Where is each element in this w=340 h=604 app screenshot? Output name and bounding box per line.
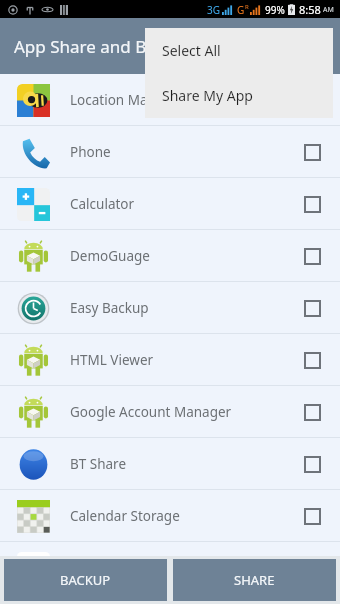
staticText: Calculator [70,195,292,213]
button[interactable]: Select Calendar Storage [292,496,332,536]
button[interactable]: Kingsoft Office [0,542,340,593]
button[interactable]: BACKUP [4,559,167,601]
staticText: Calendar Storage [70,507,292,525]
staticText: Phone [70,143,292,161]
button[interactable]: Select All [145,28,333,73]
staticText: Easy Backup [70,299,292,317]
staticText: BT Share [70,455,292,473]
button[interactable]: Select Google Account Manager [292,392,332,432]
button[interactable]: Share My App [145,73,333,118]
button[interactable]: HTML Viewer [0,334,340,385]
button[interactable]: Select BT Share [292,444,332,484]
button[interactable]: Select Calculator [292,184,332,224]
staticText: AM [323,5,334,15]
button[interactable]: Select Easy Backup [292,288,332,328]
staticText: App Share and Backup [14,35,194,58]
staticText: BACKUP [60,571,111,589]
button[interactable]: DemoGuage [0,230,340,281]
button[interactable]: Calendar Storage [0,490,340,541]
staticText: SHARE [234,571,275,589]
button[interactable]: Phone [0,126,340,177]
staticText: 3G [207,3,220,17]
staticText: Location Manager [70,91,292,109]
staticText: Google Account Manager [70,403,292,421]
staticText: HTML Viewer [70,351,292,369]
staticText: Kingsoft Office [70,559,292,577]
button[interactable]: Select DemoGuage [292,236,332,276]
button[interactable]: Calculator [0,178,340,229]
button[interactable]: BT Share [0,438,340,489]
staticText: G [237,3,245,17]
button[interactable]: Select HTML Viewer [292,340,332,380]
button[interactable]: Easy Backup [0,282,340,333]
button[interactable]: Select Phone [292,132,332,172]
staticText: 99% [265,3,285,17]
staticText: R [245,3,249,11]
button[interactable]: SHARE [173,559,336,601]
button[interactable]: Google Account Manager [0,386,340,437]
staticText: Select All [162,41,221,60]
staticText: DemoGuage [70,247,292,265]
button[interactable]: Select Kingsoft Office [292,548,332,588]
button[interactable]: Location Manager [0,74,340,125]
staticText: Share My App [162,86,253,105]
button[interactable]: Select Location Manager [292,80,332,120]
staticText: 8:58 [299,2,321,17]
